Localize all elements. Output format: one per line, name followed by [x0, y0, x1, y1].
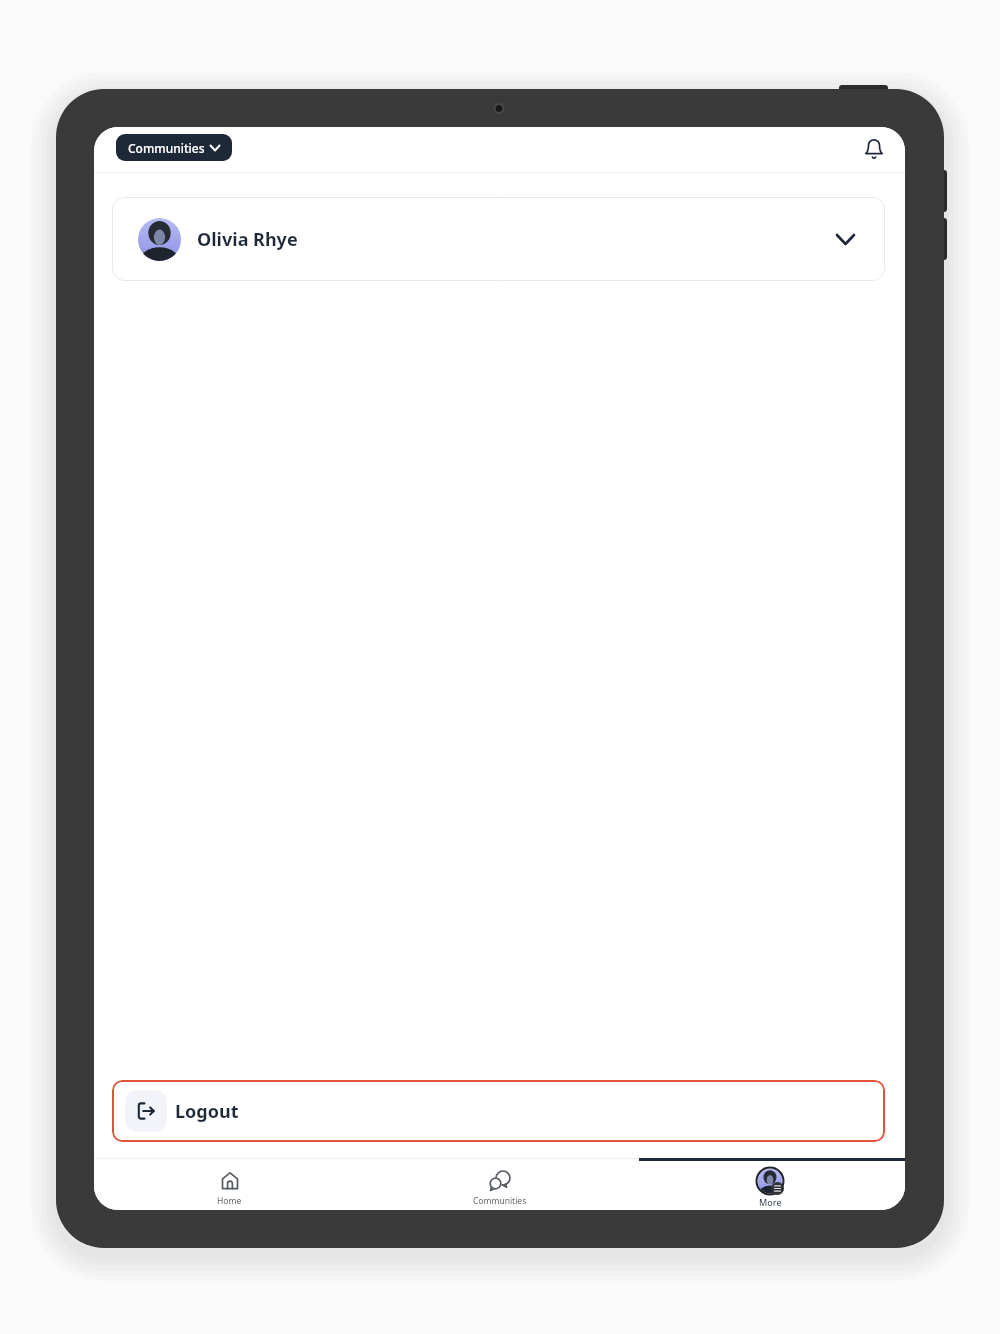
- staticText: More: [759, 1196, 782, 1208]
- staticText: Home: [217, 1195, 242, 1207]
- button[interactable]: Communities: [365, 1158, 635, 1210]
- button[interactable]: Olivia Rhye: [112, 197, 885, 281]
- button[interactable]: Communities: [116, 134, 232, 161]
- button[interactable]: Home: [94, 1158, 365, 1210]
- button[interactable]: [856, 129, 892, 169]
- staticText: Communities: [128, 140, 205, 156]
- staticText: Logout: [175, 1099, 239, 1124]
- button[interactable]: Logout: [112, 1080, 885, 1142]
- staticText: Communities: [473, 1195, 527, 1207]
- staticText: Olivia Rhye: [197, 227, 298, 252]
- button[interactable]: More: [635, 1158, 905, 1210]
